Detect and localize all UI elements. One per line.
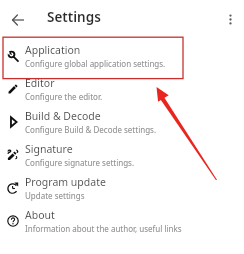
staticText: Signature [25, 142, 73, 156]
staticText: Program update [25, 175, 106, 189]
staticText: Configure the editor. [25, 91, 103, 102]
button[interactable]: About [0, 204, 244, 237]
button[interactable]: Application [0, 39, 244, 72]
staticText: Update settings [25, 190, 85, 201]
staticText: Configure signature settings. [25, 157, 135, 168]
button[interactable]: Program update [0, 171, 244, 204]
staticText: About [25, 208, 55, 222]
staticText: Information about the author, useful lin… [25, 223, 182, 234]
button[interactable]: Signature [0, 138, 244, 171]
staticText: Settings [47, 8, 101, 26]
button[interactable]: More options [216, 5, 244, 33]
button[interactable]: Back [4, 6, 32, 34]
button[interactable]: Build & Decode [0, 105, 244, 138]
staticText: Configure global application settings. [25, 58, 166, 69]
staticText: Build & Decode [25, 109, 101, 123]
staticText: Application [25, 43, 81, 57]
staticText: Editor [25, 76, 55, 90]
button[interactable]: Editor [0, 72, 244, 105]
staticText: Configure Build & Decode settings. [25, 124, 157, 135]
